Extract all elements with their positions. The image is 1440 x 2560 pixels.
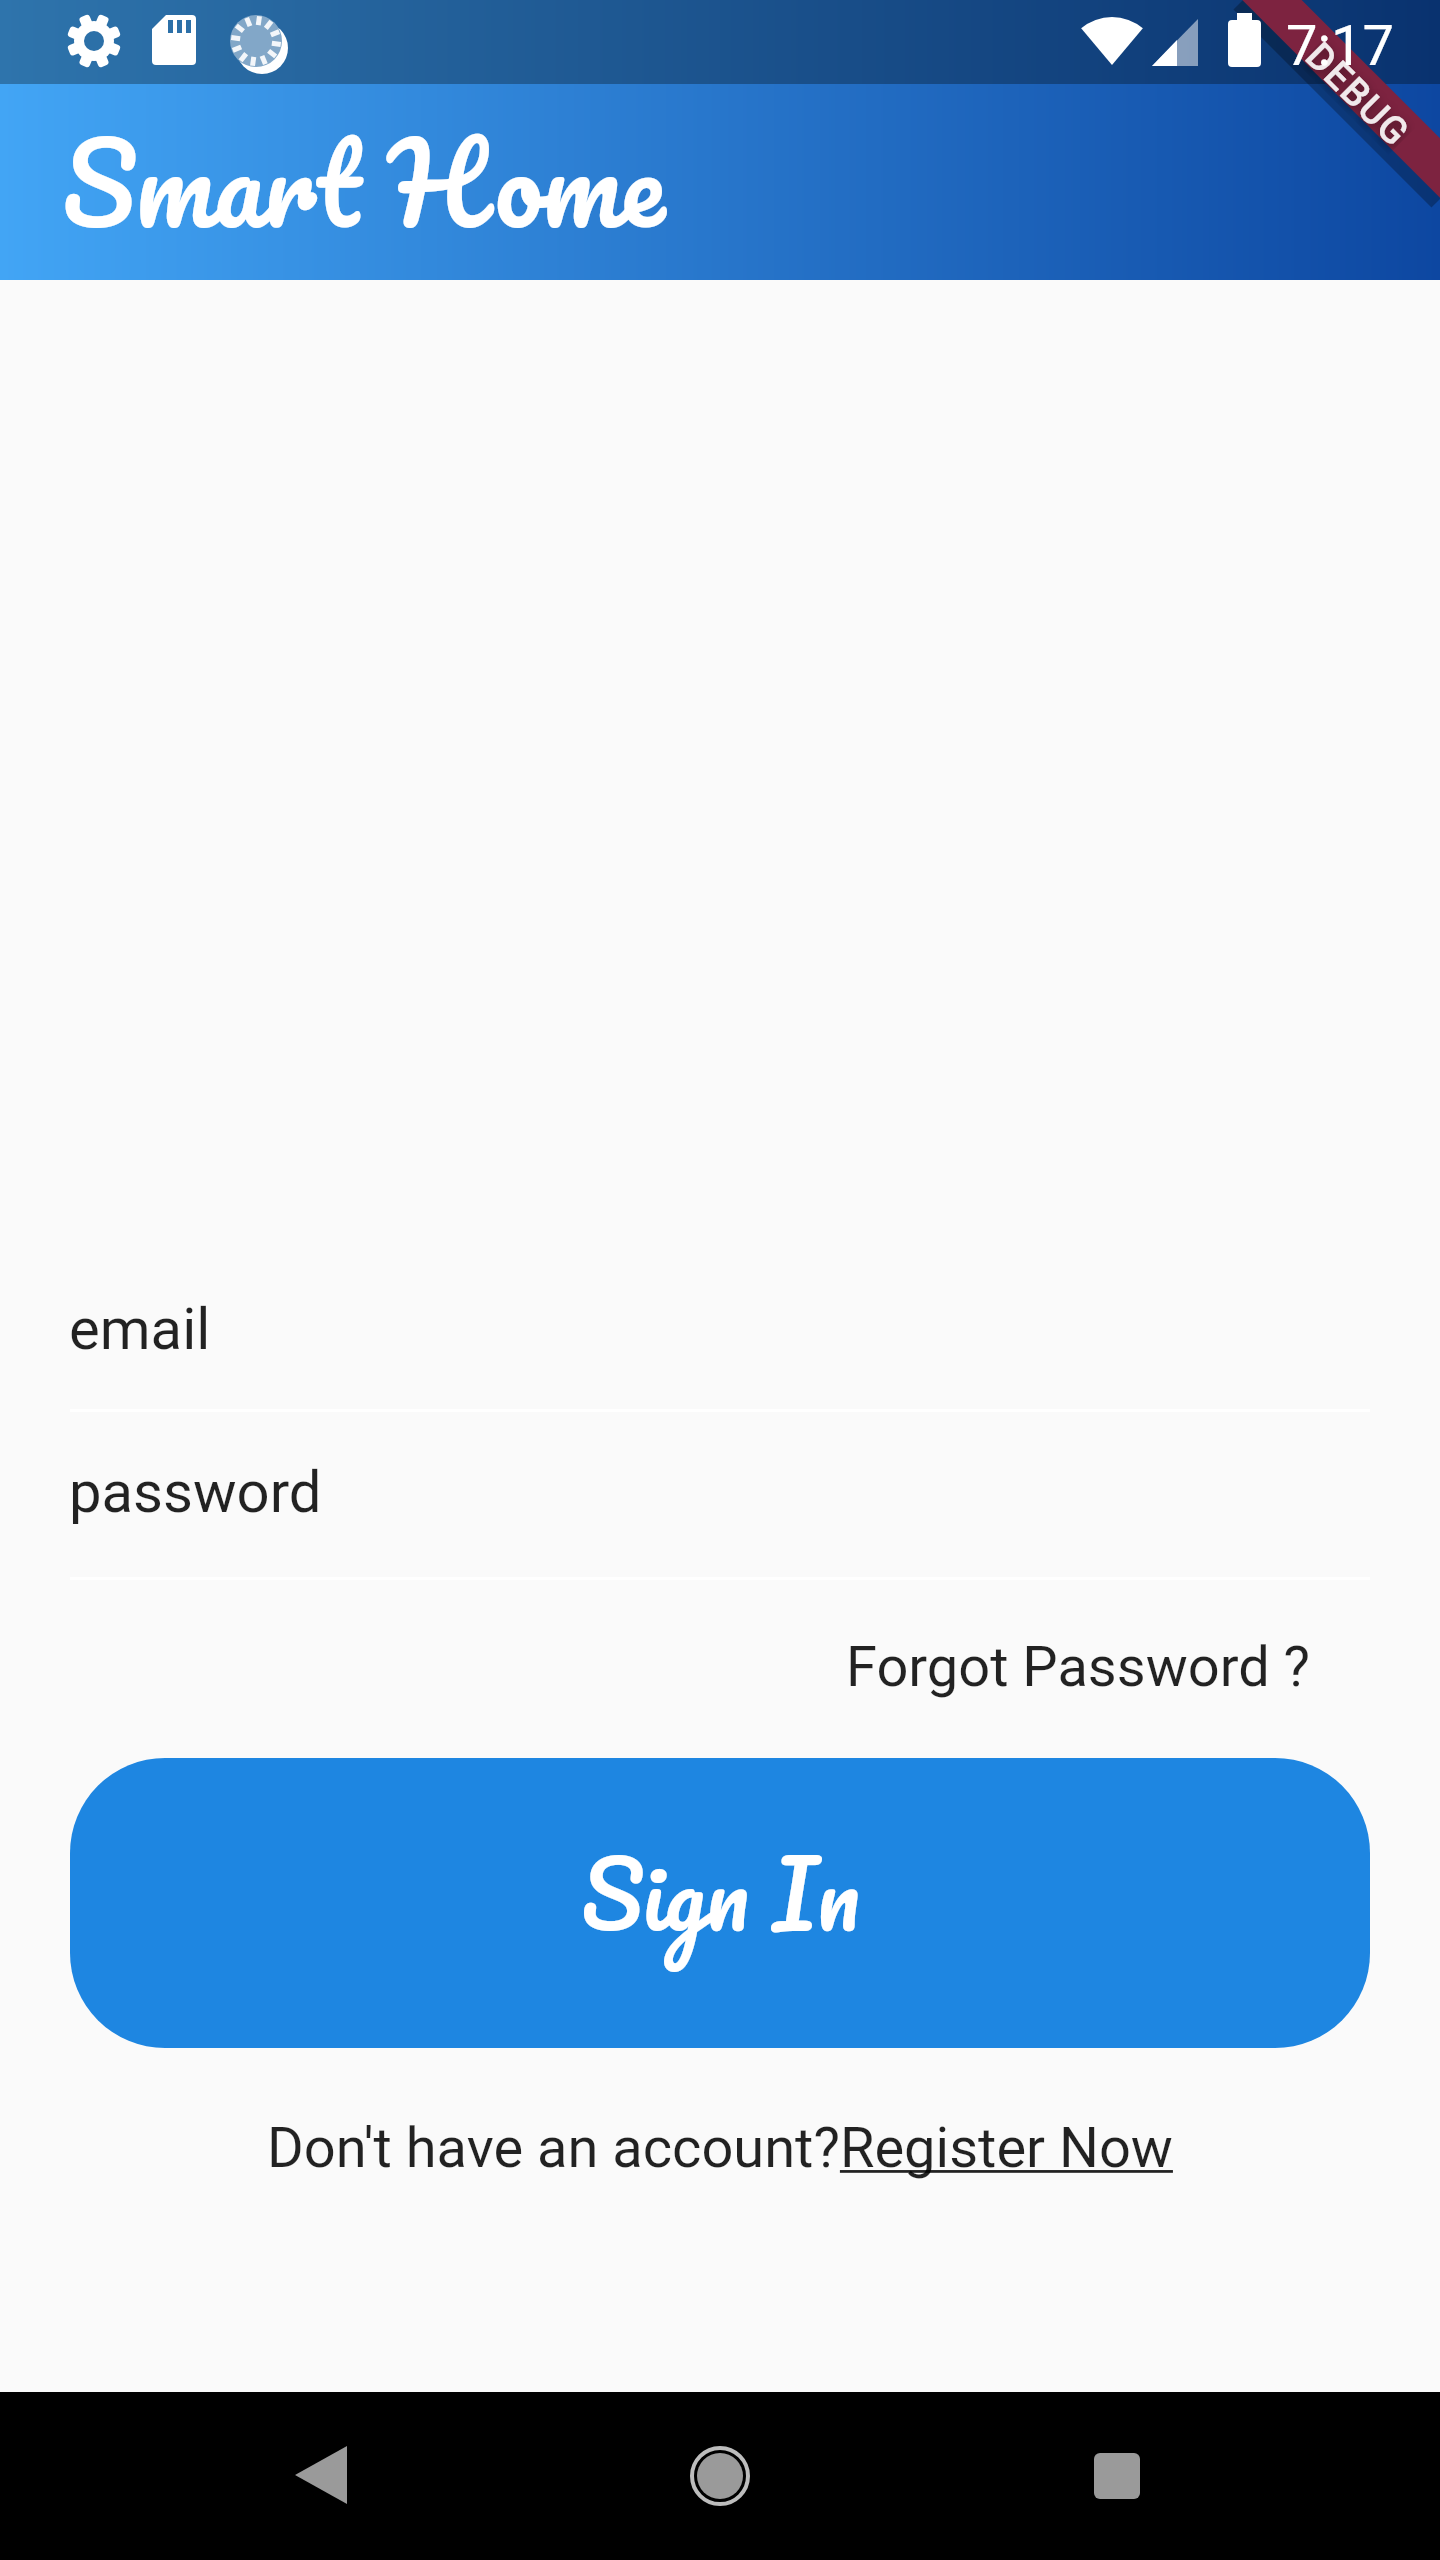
button[interactable] xyxy=(295,2446,347,2504)
button[interactable]: Forgot Password ? xyxy=(846,1634,1311,1700)
button[interactable] xyxy=(689,2445,751,2507)
button[interactable]: Don't have an account?Register Now xyxy=(267,2115,1173,2181)
button[interactable]: email xyxy=(70,1272,1370,1412)
staticText: Sign In xyxy=(581,1815,860,1971)
staticText: 7:17 xyxy=(1286,13,1394,79)
staticText: email xyxy=(69,1295,211,1363)
button[interactable]: Sign In xyxy=(70,1758,1370,2048)
staticText: DEBUG xyxy=(1298,34,1418,155)
staticText: Smart Home xyxy=(62,89,665,275)
staticText: password xyxy=(69,1458,322,1526)
button[interactable] xyxy=(1094,2453,1140,2499)
button[interactable]: password xyxy=(70,1440,1370,1580)
